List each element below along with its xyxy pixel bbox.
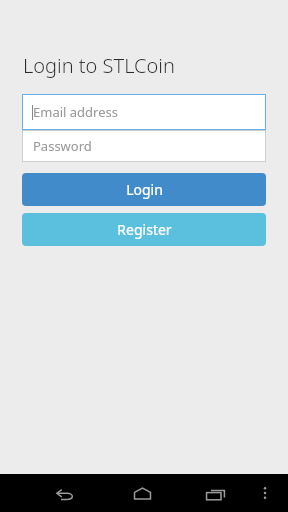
staticText: Password — [33, 137, 92, 155]
button[interactable]: Home — [121, 474, 163, 512]
button[interactable]: Login — [22, 173, 266, 206]
staticText: Login — [126, 180, 163, 199]
staticText: Email address — [33, 103, 118, 121]
button[interactable]: Password — [22, 130, 266, 162]
button[interactable]: Back — [44, 474, 86, 512]
button[interactable]: More options — [250, 478, 280, 508]
staticText: Register — [117, 220, 172, 239]
button[interactable]: Email address — [22, 94, 266, 130]
staticText: Login to STLCoin — [23, 52, 175, 79]
button[interactable]: Recent apps — [194, 474, 236, 512]
button[interactable]: Register — [22, 213, 266, 246]
